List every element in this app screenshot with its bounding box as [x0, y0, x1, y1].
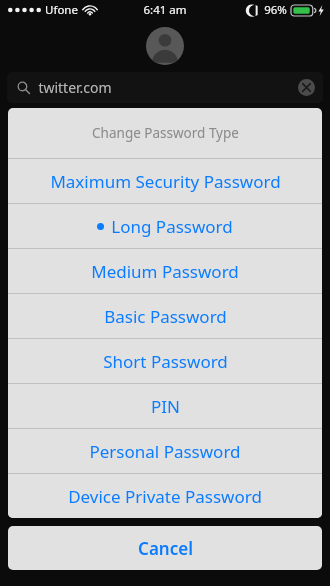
- button[interactable]: Clear text: [298, 79, 315, 96]
- staticText: Change Password Type: [92, 124, 239, 142]
- staticText: PIN: [151, 395, 180, 418]
- staticText: Long Password: [111, 215, 233, 238]
- button[interactable]: Cancel: [8, 526, 322, 570]
- staticText: 96%: [264, 2, 287, 18]
- button[interactable]: PIN: [8, 384, 322, 428]
- staticText: Medium Password: [91, 260, 239, 283]
- staticText: Basic Password: [104, 305, 227, 328]
- button[interactable]: Short Password: [8, 339, 322, 383]
- staticText: Short Password: [103, 350, 228, 373]
- button[interactable]: Maximum Security Password: [8, 159, 322, 203]
- button[interactable]: Basic Password: [8, 294, 322, 338]
- button[interactable]: Personal Password: [8, 429, 322, 473]
- staticText: 6:41 am: [143, 2, 187, 18]
- staticText: Device Private Password: [68, 485, 262, 508]
- button[interactable]: twitter.com: [7, 72, 323, 103]
- button[interactable]: Long Password: [8, 204, 322, 248]
- staticText: Ufone: [45, 2, 78, 18]
- button[interactable]: Account: [146, 27, 184, 65]
- button[interactable]: Medium Password: [8, 249, 322, 293]
- button[interactable]: Device Private Password: [8, 474, 322, 518]
- staticText: Maximum Security Password: [50, 170, 281, 193]
- staticText: twitter.com: [38, 78, 112, 97]
- staticText: Cancel: [138, 537, 193, 560]
- staticText: Personal Password: [89, 440, 241, 463]
